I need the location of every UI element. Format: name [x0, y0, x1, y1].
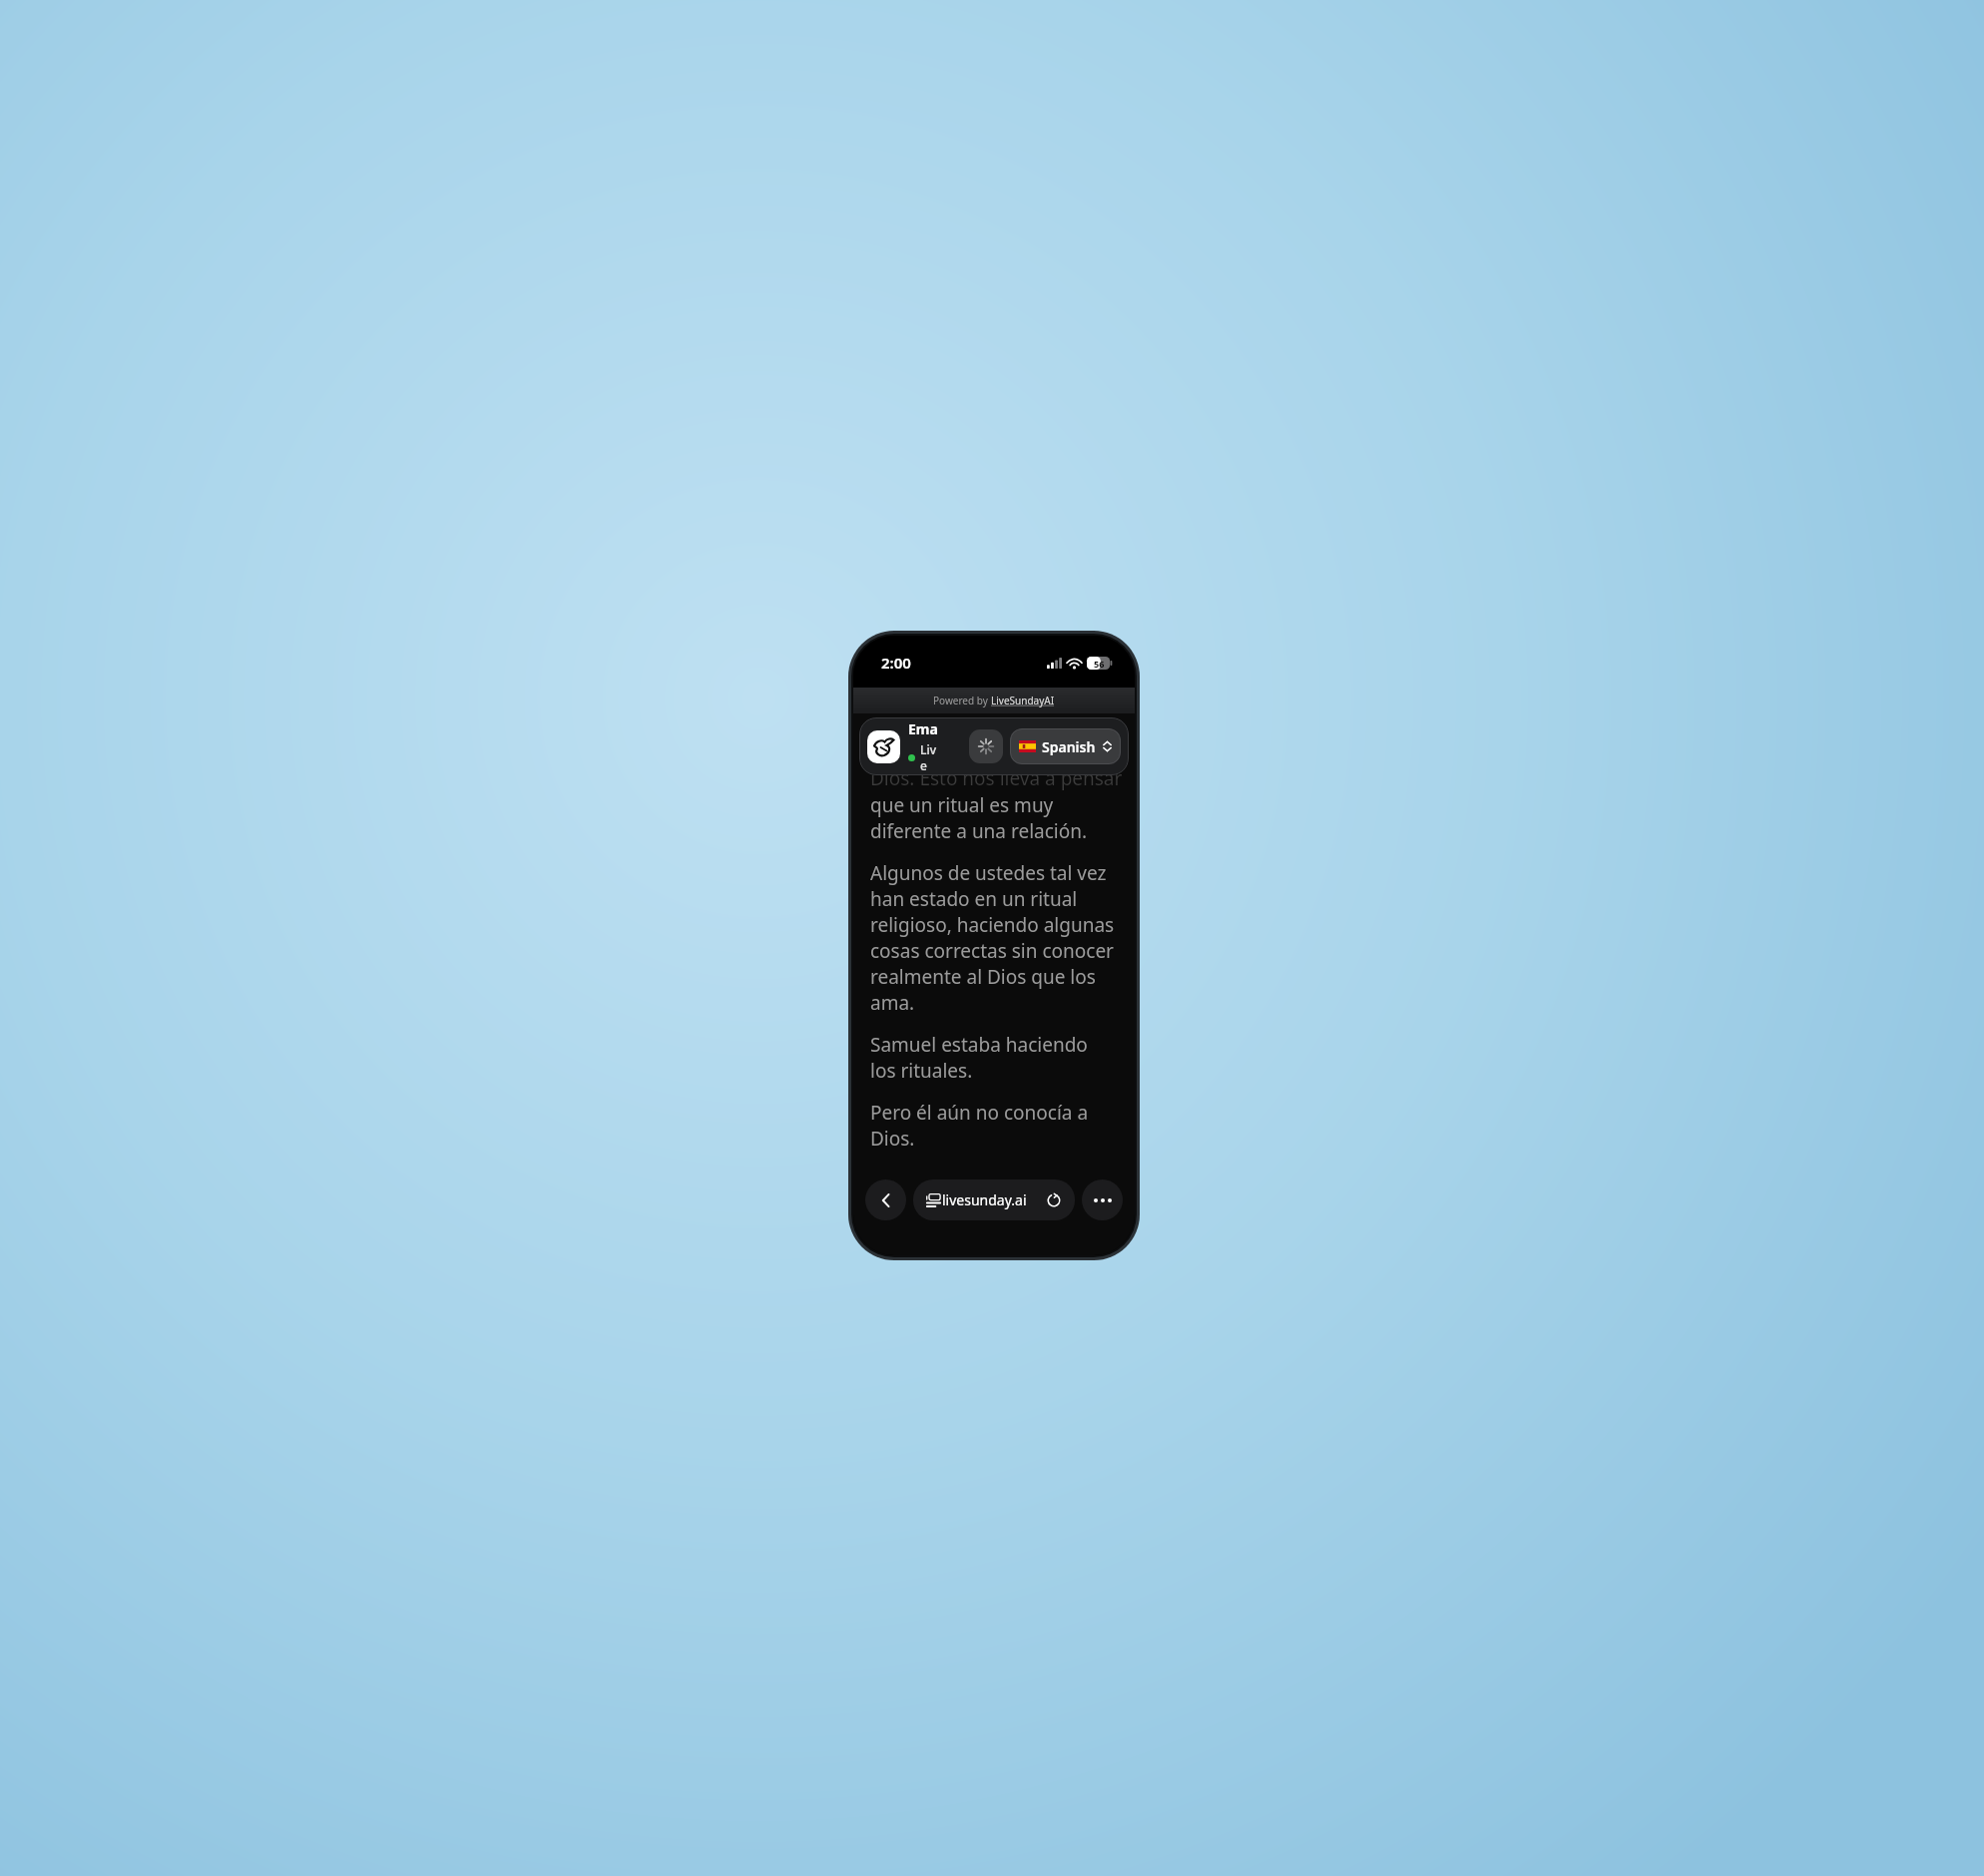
button[interactable]: Page settings	[924, 1191, 942, 1209]
staticText: Spanish	[1042, 737, 1096, 756]
staticText: Samuel estaba haciendo los rituales.	[870, 1032, 1118, 1084]
staticText: Powered by	[933, 694, 991, 707]
button[interactable]: Spanish	[1010, 728, 1121, 764]
staticText: Emanuel Calva…	[908, 719, 938, 738]
button[interactable]: Channel avatar	[867, 730, 900, 763]
staticText: Live	[920, 741, 938, 773]
button[interactable]: LiveSundayAI	[991, 694, 1055, 707]
staticText: Dios. Esto nos lleva a pensar	[870, 765, 1123, 791]
button[interactable]: Page settings	[913, 1179, 1075, 1220]
button[interactable]: Back	[865, 1179, 906, 1220]
staticText: Algunos de ustedes tal vez han estado en…	[870, 860, 1118, 1016]
staticText: 56	[1094, 658, 1105, 670]
button[interactable]: More options	[1082, 1179, 1123, 1220]
staticText: que un ritual es muy diferente a una rel…	[870, 792, 1118, 844]
button[interactable]: Loading	[969, 729, 1003, 763]
staticText: 2:00	[881, 653, 911, 673]
staticText: Pero él aún no conocía a Dios.	[870, 1100, 1118, 1152]
staticText: livesunday.ai	[942, 1190, 1044, 1209]
button[interactable]: Reload	[1044, 1190, 1064, 1210]
